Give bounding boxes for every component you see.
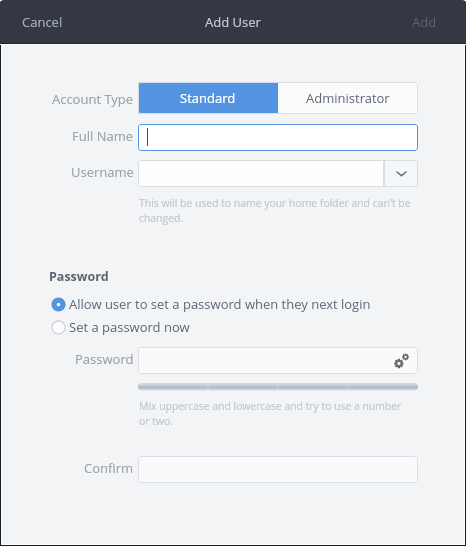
button[interactable]	[138, 456, 418, 483]
button[interactable]: Allow user to set a password when they n…	[51, 295, 371, 313]
button[interactable]: Show username suggestions	[384, 160, 418, 187]
staticText: Password	[49, 268, 109, 285]
staticText: Add	[412, 13, 437, 31]
button[interactable]: Administrator	[278, 82, 418, 114]
staticText: Confirm	[84, 459, 134, 477]
button[interactable]: Standard	[138, 82, 278, 114]
button[interactable]: Cancel	[10, 6, 75, 38]
staticText: Account Type	[52, 90, 134, 108]
staticText: Set a password now	[69, 318, 190, 336]
staticText: Standard	[180, 89, 236, 107]
staticText: Add User	[205, 13, 261, 31]
staticText: Allow user to set a password when they n…	[69, 295, 371, 313]
staticText: This will be used to name your home fold…	[139, 196, 413, 225]
button[interactable]	[138, 124, 418, 151]
staticText: Username	[71, 163, 134, 181]
staticText: Password	[75, 350, 134, 368]
button[interactable]: Set a password now	[51, 318, 190, 336]
button[interactable]: Generate password	[138, 347, 418, 374]
button[interactable]: Add	[400, 6, 449, 38]
staticText: Administrator	[306, 89, 390, 107]
button[interactable]	[138, 160, 384, 187]
staticText: Mix uppercase and lowercase and try to u…	[139, 399, 413, 428]
staticText: Full Name	[72, 127, 134, 145]
staticText: Cancel	[22, 13, 63, 31]
button[interactable]: Generate password	[393, 351, 412, 370]
